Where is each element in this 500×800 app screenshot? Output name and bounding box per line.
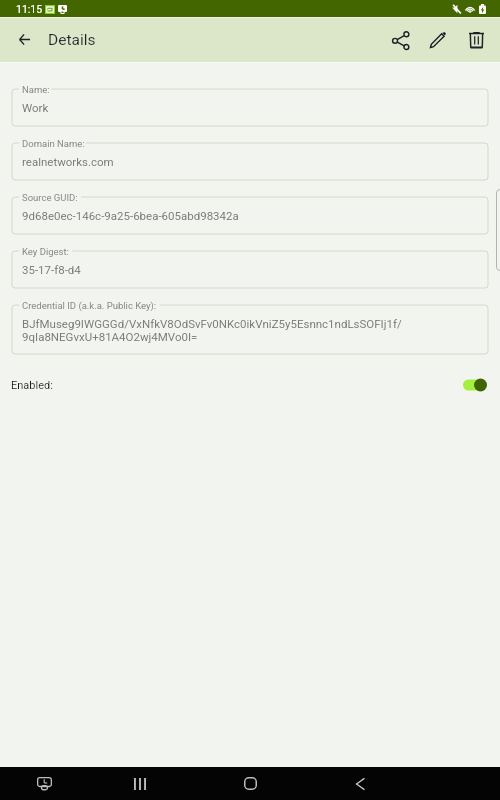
- button[interactable]: Enabled toggle: [463, 376, 487, 394]
- button[interactable]: Work: [12, 89, 488, 126]
- staticText: Details: [48, 31, 96, 49]
- button[interactable]: Share: [383, 23, 417, 57]
- button[interactable]: 35-17-f8-d4: [12, 251, 488, 288]
- staticText: 9qIa8NEGvxU+81A4O2wj4MVo0I=: [22, 330, 198, 343]
- button[interactable]: Back: [8, 23, 40, 55]
- staticText: 11:15: [16, 3, 43, 15]
- button[interactable]: Edit: [421, 23, 455, 57]
- staticText: Source GUID:: [22, 192, 78, 203]
- button[interactable]: Screenshot: [18, 767, 70, 800]
- button[interactable]: Delete: [459, 23, 493, 57]
- button[interactable]: Home: [224, 767, 276, 800]
- staticText: Enabled:: [11, 379, 53, 392]
- button[interactable]: BJfMuseg9IWGGGd/VxNfkV8OdSvFv0NKc0ikVniZ…: [12, 305, 488, 354]
- staticText: 35-17-f8-d4: [22, 263, 81, 276]
- button[interactable]: realnetworks.com: [12, 143, 488, 180]
- staticText: realnetworks.com: [22, 155, 114, 168]
- button[interactable]: Recents: [114, 767, 166, 800]
- button[interactable]: 9d68e0ec-146c-9a25-6bea-605abd98342a: [12, 197, 488, 234]
- staticText: Credential ID (a.k.a. Public Key):: [22, 300, 157, 311]
- staticText: Name:: [22, 84, 50, 95]
- staticText: Key Digest:: [22, 246, 69, 257]
- staticText: Domain Name:: [22, 138, 85, 149]
- staticText: BJfMuseg9IWGGGd/VxNfkV8OdSvFv0NKc0ikVniZ…: [22, 317, 402, 330]
- staticText: Work: [22, 101, 49, 114]
- button[interactable]: Back: [334, 767, 386, 800]
- staticText: 9d68e0ec-146c-9a25-6bea-605abd98342a: [22, 209, 239, 222]
